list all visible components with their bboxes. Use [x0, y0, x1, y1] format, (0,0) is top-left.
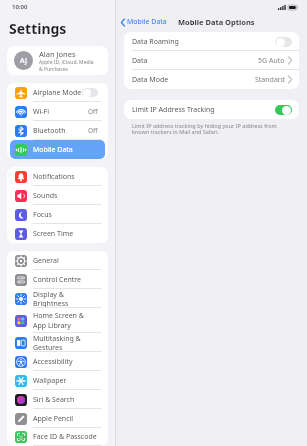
button[interactable]: Sounds [10, 186, 105, 205]
staticText: General [33, 256, 59, 266]
staticText: Control Centre [33, 275, 82, 285]
staticText: Home Screen & [33, 311, 84, 321]
staticText: & Purchases [39, 66, 68, 73]
staticText: 5G Auto [258, 56, 285, 66]
staticText: Sounds [33, 191, 58, 201]
button[interactable]: Data Mode [124, 70, 299, 89]
staticText: Settings [9, 19, 67, 38]
button[interactable]: Data Roaming [124, 32, 299, 51]
staticText: Siri & Search [33, 395, 75, 405]
staticText: Apple Pencil [33, 414, 74, 424]
button[interactable]: Multitasking & Gestures [10, 333, 105, 352]
staticText: Data [132, 56, 148, 66]
staticText: Mobile Data [127, 17, 167, 27]
button[interactable]: Airplane Mode [10, 83, 105, 102]
button[interactable]: Toggle [82, 88, 98, 97]
staticText: Face ID & Passcode [33, 432, 97, 442]
staticText: Limit IP address tracking by hiding your… [132, 122, 287, 136]
staticText: Mobile Data Options [178, 17, 255, 27]
staticText: App Library [33, 321, 71, 331]
button[interactable]: Mobile Data [10, 140, 105, 159]
staticText: Off [88, 126, 98, 135]
staticText: Airplane Mode [33, 88, 82, 98]
button[interactable]: Accessibility [10, 352, 105, 371]
staticText: Off [88, 107, 98, 116]
button[interactable]: Data [124, 51, 299, 70]
button[interactable]: Notifications [10, 167, 105, 186]
button[interactable]: Screen Time [10, 224, 105, 243]
staticText: Data Mode [132, 75, 169, 85]
staticText: Multitasking & Gestures [33, 334, 98, 352]
button[interactable]: Wallpaper [10, 371, 105, 390]
staticText: Bluetooth [33, 126, 66, 136]
button[interactable]: Home Screen & [10, 308, 105, 333]
button[interactable]: Apple Pencil [10, 409, 105, 428]
staticText: Screen Time [33, 229, 74, 239]
staticText: 10:00 [12, 3, 28, 11]
button[interactable]: General [10, 251, 105, 270]
staticText: Notifications [33, 172, 75, 182]
other: Back [121, 19, 125, 26]
staticText: Mobile Data [33, 145, 73, 155]
button[interactable]: Toggle [275, 37, 292, 47]
button[interactable]: Bluetooth [10, 121, 105, 140]
button[interactable]: Wi-Fi [10, 102, 105, 121]
staticText: Data Roaming [132, 37, 179, 47]
staticText: Wallpaper [33, 376, 67, 386]
button[interactable]: AJ [7, 46, 108, 75]
button[interactable]: Back [121, 17, 167, 27]
staticText: Alan Jones [39, 49, 76, 59]
staticText: Apple ID, iCloud, Media [39, 59, 94, 66]
button[interactable]: Control Centre [10, 270, 105, 289]
staticText: Limit IP Address Tracking [132, 105, 215, 115]
button[interactable]: Face ID & Passcode [10, 428, 105, 446]
button[interactable]: Focus [10, 205, 105, 224]
staticText: Focus [33, 210, 52, 220]
staticText: Standard [255, 75, 285, 85]
staticText: AJ [20, 56, 27, 66]
button[interactable]: Toggle [275, 105, 292, 115]
button[interactable]: Display & Brightness [10, 289, 105, 308]
staticText: Accessibility [33, 357, 73, 367]
button[interactable]: Limit IP Address Tracking [124, 100, 299, 119]
button[interactable]: Siri & Search [10, 390, 105, 409]
staticText: Wi-Fi [33, 107, 50, 117]
staticText: Display & Brightness [33, 290, 98, 308]
